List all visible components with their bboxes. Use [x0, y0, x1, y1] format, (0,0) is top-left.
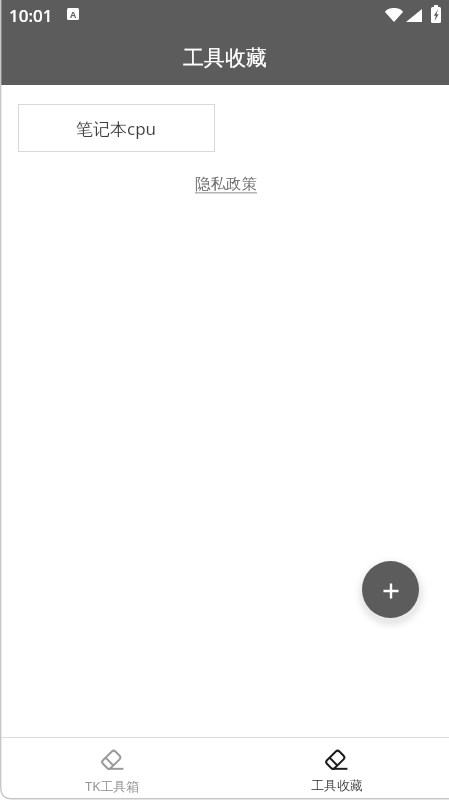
- staticText: 10:01: [9, 4, 53, 27]
- button[interactable]: 隐私政策: [195, 174, 257, 194]
- staticText: 工具收藏: [183, 45, 267, 71]
- button[interactable]: TK工具箱: [0, 737, 224, 800]
- staticText: 工具收藏: [311, 777, 363, 793]
- staticText: A: [70, 8, 77, 20]
- staticText: TK工具箱: [85, 777, 140, 795]
- staticText: 隐私政策: [195, 174, 257, 194]
- staticText: 笔记本cpu: [76, 117, 157, 140]
- button[interactable]: Add: [362, 561, 419, 618]
- button[interactable]: 笔记本cpu: [18, 104, 215, 152]
- button[interactable]: 工具收藏: [224, 737, 449, 800]
